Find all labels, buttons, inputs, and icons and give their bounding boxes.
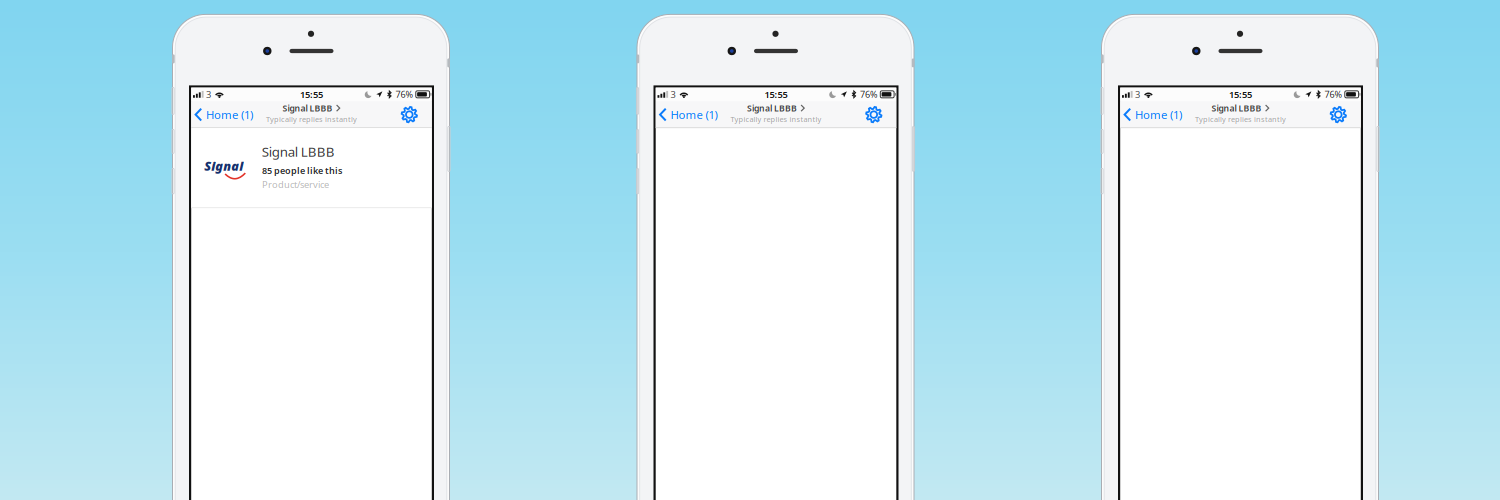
staticText: Signal LBBB <box>262 143 335 161</box>
staticText: Product/service <box>262 178 329 191</box>
staticText: Typically replies instantly <box>730 114 821 124</box>
staticText: 15:55 <box>1229 88 1252 101</box>
staticText: 3 <box>670 88 675 101</box>
staticText: Signal LBBB <box>282 102 332 114</box>
staticText: 15:55 <box>764 88 787 101</box>
button[interactable]: Settings <box>396 101 422 128</box>
staticText: Signal LBBB <box>1211 102 1261 114</box>
staticText: Typically replies instantly <box>266 114 357 124</box>
staticText: 76% <box>395 88 413 100</box>
staticText: Home (1) <box>1135 107 1182 122</box>
button[interactable]: Settings <box>861 101 887 128</box>
staticText: Signal <box>204 157 243 174</box>
staticText: Home (1) <box>206 107 253 122</box>
staticText: Typically replies instantly <box>1195 114 1286 124</box>
button[interactable]: Settings <box>1325 101 1351 128</box>
staticText: 76% <box>1324 88 1342 100</box>
button[interactable]: Home (1) <box>656 101 723 128</box>
button[interactable]: Home (1) <box>1120 101 1188 128</box>
staticText: Signal LBBB <box>747 102 797 114</box>
staticText: 76% <box>860 88 878 100</box>
staticText: 85 people like this <box>262 164 342 177</box>
staticText: Home (1) <box>670 107 717 122</box>
staticText: 15:55 <box>300 88 323 101</box>
staticText: 3 <box>1135 88 1140 101</box>
button[interactable]: Home (1) <box>191 101 259 128</box>
staticText: 3 <box>206 88 211 101</box>
